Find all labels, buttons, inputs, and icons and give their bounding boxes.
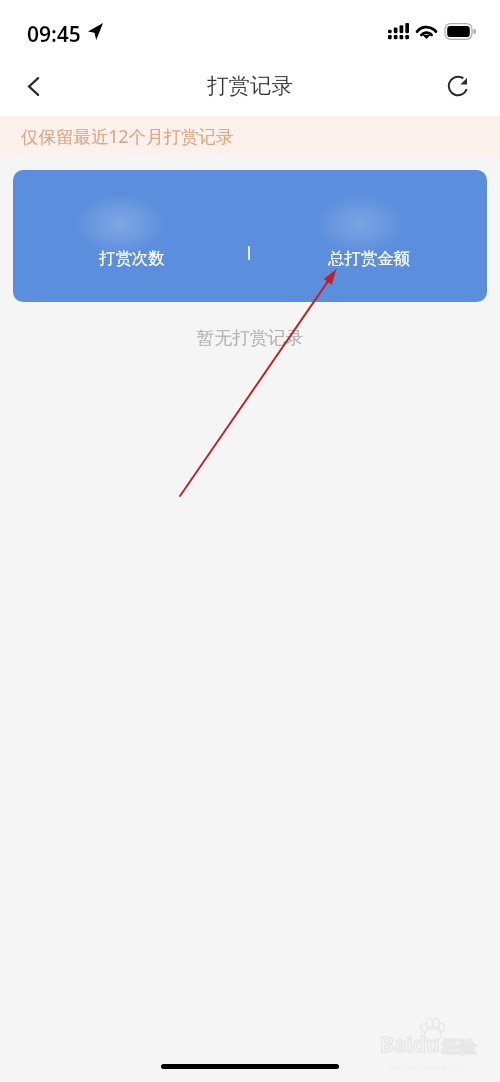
staticText: 打赏记录 (207, 72, 293, 99)
button[interactable]: 打赏次数 (13, 170, 487, 302)
staticText: 总打赏金额 (328, 248, 410, 269)
staticText: 仅保留最近12个月打赏记录 (21, 124, 234, 148)
staticText: 打赏次数 (99, 248, 165, 269)
staticText: 经验 (442, 1037, 476, 1058)
staticText: 09:45 (27, 20, 81, 49)
staticText: 暂无打赏记录 (0, 327, 500, 349)
button[interactable]: Refresh (438, 66, 478, 106)
button[interactable]: Back (9, 62, 57, 110)
staticText: Baidu (380, 1030, 440, 1059)
